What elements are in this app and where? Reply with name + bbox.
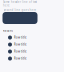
staticText: Recent [3, 29, 13, 32]
staticText: second line goes here [3, 8, 36, 12]
staticText: Row title [14, 36, 27, 39]
staticText: Some header line of text here [3, 0, 37, 7]
staticText: Row title [14, 43, 27, 46]
staticText: Row title [14, 57, 27, 60]
staticText: Row title [14, 50, 27, 53]
